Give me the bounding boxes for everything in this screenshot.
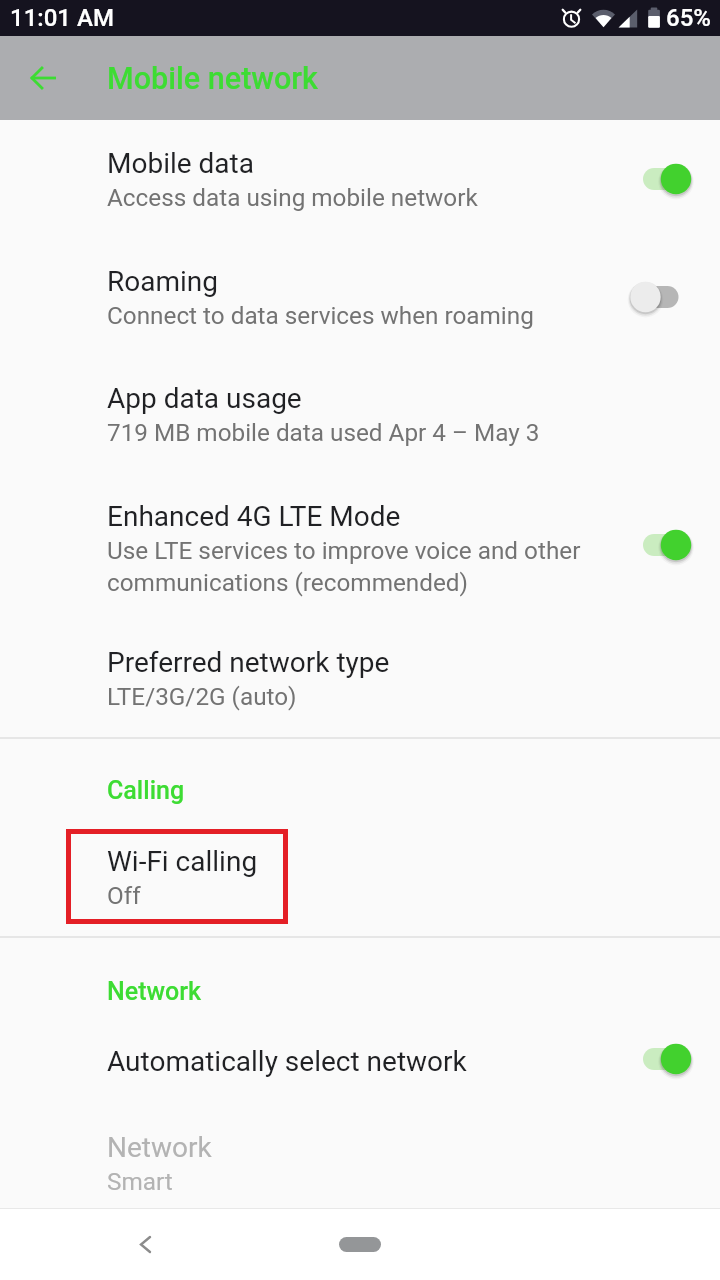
staticText: App data usage bbox=[107, 382, 302, 415]
button[interactable]: Automatically select network bbox=[0, 1031, 720, 1088]
button[interactable]: Network bbox=[0, 1117, 720, 1208]
button[interactable]: Preferred network type bbox=[0, 632, 720, 723]
staticText: Roaming bbox=[107, 265, 219, 298]
staticText: 65% bbox=[666, 4, 711, 32]
button[interactable]: Enhanced 4G LTE Mode bbox=[0, 486, 720, 610]
button[interactable]: Mobile data bbox=[0, 133, 720, 224]
staticText: Network bbox=[107, 977, 202, 1006]
button[interactable]: Navigate up bbox=[15, 50, 71, 106]
staticText: Automatically select network bbox=[107, 1045, 467, 1078]
staticText: 719 MB mobile data used Apr 4 – May 3 bbox=[107, 418, 540, 446]
staticText: Preferred network type bbox=[107, 646, 390, 679]
button[interactable]: On bbox=[635, 523, 705, 567]
staticText: Off bbox=[107, 881, 141, 909]
button[interactable]: Home bbox=[320, 1224, 400, 1264]
button[interactable]: Back bbox=[121, 1220, 169, 1268]
staticText: Enhanced 4G LTE Mode bbox=[107, 500, 401, 533]
staticText: Wi-Fi calling bbox=[107, 845, 258, 878]
button[interactable]: App data usage bbox=[0, 368, 720, 459]
button[interactable]: On bbox=[635, 1037, 705, 1081]
button[interactable]: Off bbox=[625, 275, 695, 319]
staticText: Mobile data bbox=[107, 147, 254, 180]
staticText: Use LTE services to improve voice and ot… bbox=[107, 536, 581, 597]
staticText: Smart bbox=[107, 1167, 173, 1195]
staticText: Access data using mobile network bbox=[107, 183, 478, 211]
staticText: Mobile network bbox=[107, 61, 318, 97]
staticText: 11:01 AM bbox=[10, 4, 114, 32]
staticText: Calling bbox=[107, 776, 185, 805]
button[interactable]: On bbox=[635, 157, 705, 201]
staticText: Connect to data services when roaming bbox=[107, 301, 534, 329]
button[interactable]: Wi-Fi calling bbox=[0, 831, 720, 922]
staticText: Network bbox=[107, 1131, 212, 1164]
button[interactable]: Roaming bbox=[0, 251, 720, 342]
staticText: LTE/3G/2G (auto) bbox=[107, 682, 297, 710]
